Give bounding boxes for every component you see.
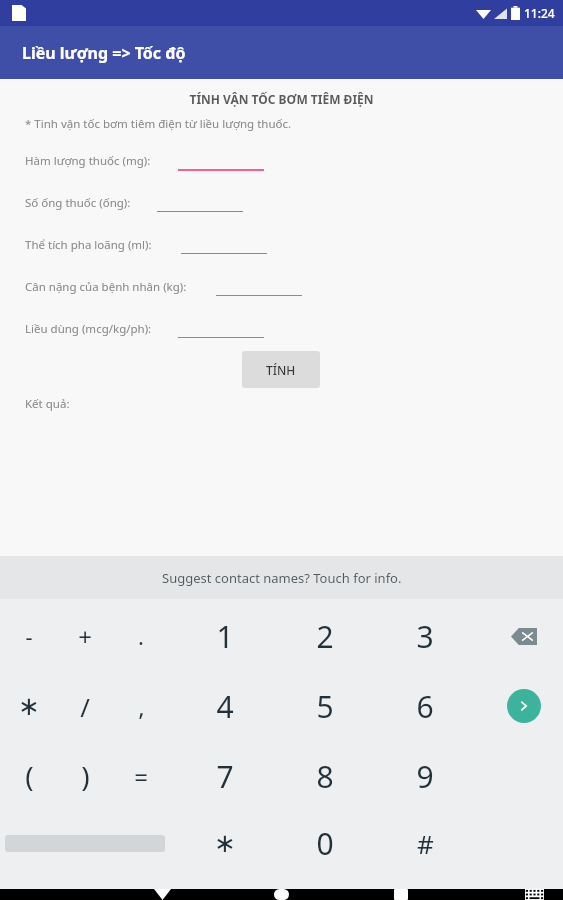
- staticText: Suggest contact names? Touch for info.: [162, 569, 402, 587]
- staticText: =: [134, 760, 148, 793]
- button[interactable]: Switch keyboard: [517, 889, 551, 900]
- staticText: ,: [138, 690, 145, 723]
- staticText: 0: [316, 823, 334, 864]
- button[interactable]: ∗: [1, 678, 57, 734]
- staticText: 1: [216, 616, 234, 657]
- staticText: Liều lượng => Tốc độ: [22, 42, 186, 64]
- button[interactable]: 0: [297, 815, 353, 871]
- staticText: 6: [416, 686, 434, 727]
- staticText: Cân nặng của bệnh nhân (kg):: [25, 279, 187, 295]
- button[interactable]: 9: [397, 748, 453, 804]
- staticText: Thể tích pha loãng (ml):: [25, 237, 152, 253]
- button[interactable]: ,: [113, 678, 169, 734]
- button[interactable]: TÍNH: [242, 351, 320, 388]
- staticText: ∗: [18, 691, 40, 721]
- staticText: 11:24: [524, 5, 555, 21]
- staticText: Hàm lượng thuốc (mg):: [25, 153, 151, 169]
- button[interactable]: Backspace: [496, 608, 552, 664]
- staticText: * Tinh vận tốc bơm tiêm điện từ liều lượ…: [25, 116, 292, 132]
- staticText: 9: [416, 756, 434, 797]
- staticText: /: [80, 689, 90, 724]
- staticText: (: [25, 757, 34, 795]
- button[interactable]: 4: [197, 678, 253, 734]
- button[interactable]: .: [113, 608, 169, 664]
- button[interactable]: 6: [397, 678, 453, 734]
- staticText: TÍNH VẬN TỐC BƠM TIÊM ĐIỆN: [0, 91, 563, 107]
- button[interactable]: Suggest contact names? Touch for info.: [0, 556, 563, 599]
- staticText: +: [78, 620, 92, 653]
- button[interactable]: +: [57, 608, 113, 664]
- staticText: Kết quả:: [25, 396, 70, 412]
- button[interactable]: Recent apps: [379, 889, 423, 900]
- button[interactable]: ): [57, 748, 113, 804]
- button[interactable]: 7: [197, 748, 253, 804]
- staticText: 3: [416, 616, 434, 657]
- button[interactable]: (: [1, 748, 57, 804]
- staticText: 8: [316, 756, 334, 797]
- button[interactable]: 3: [397, 608, 453, 664]
- button[interactable]: -: [1, 608, 57, 664]
- staticText: Số ống thuốc (ống):: [25, 195, 131, 211]
- staticText: #: [417, 826, 434, 861]
- staticText: ): [81, 757, 90, 795]
- staticText: 2: [316, 616, 334, 657]
- button[interactable]: 5: [297, 678, 353, 734]
- button[interactable]: =: [113, 748, 169, 804]
- button[interactable]: 8: [297, 748, 353, 804]
- button[interactable]: 2: [297, 608, 353, 664]
- staticText: ∗: [214, 828, 236, 858]
- button[interactable]: /: [57, 678, 113, 734]
- button[interactable]: #: [397, 815, 453, 871]
- button[interactable]: Back: [140, 889, 184, 900]
- button[interactable]: ∗: [197, 815, 253, 871]
- staticText: 4: [216, 686, 234, 727]
- button[interactable]: 1: [197, 608, 253, 664]
- staticText: Liều dùng (mcg/kg/ph):: [25, 321, 152, 337]
- button[interactable]: Enter: [496, 678, 552, 734]
- staticText: TÍNH: [266, 362, 296, 378]
- staticText: 7: [216, 756, 234, 797]
- staticText: 5: [316, 686, 334, 727]
- staticText: -: [25, 621, 33, 651]
- staticText: .: [138, 621, 144, 651]
- button[interactable]: Home: [259, 889, 303, 900]
